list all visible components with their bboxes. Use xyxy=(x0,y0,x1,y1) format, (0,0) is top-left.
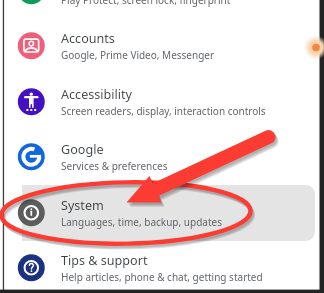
button[interactable]: Accessibility xyxy=(5,74,315,130)
button[interactable]: Accounts xyxy=(5,18,315,74)
staticText: Tips & support xyxy=(61,252,148,269)
staticText: Google, Prime Video, Messenger xyxy=(61,48,215,62)
staticText: Screen readers, display, interaction con… xyxy=(61,104,266,118)
staticText: Help articles, phone & chat, getting sta… xyxy=(61,270,263,284)
staticText: Accounts xyxy=(61,30,115,47)
button[interactable]: Tips & support xyxy=(5,240,315,293)
staticText: System xyxy=(61,197,104,214)
button[interactable]: Security xyxy=(5,0,315,19)
staticText: Languages, time, backup, updates xyxy=(61,215,222,229)
button[interactable]: Google xyxy=(5,129,315,185)
staticText: Google xyxy=(61,141,104,158)
staticText: Play Protect, screen lock, fingerprint xyxy=(61,0,231,7)
button[interactable]: System xyxy=(5,185,315,241)
staticText: Services & preferences xyxy=(61,159,168,173)
staticText: Accessibility xyxy=(61,86,133,103)
